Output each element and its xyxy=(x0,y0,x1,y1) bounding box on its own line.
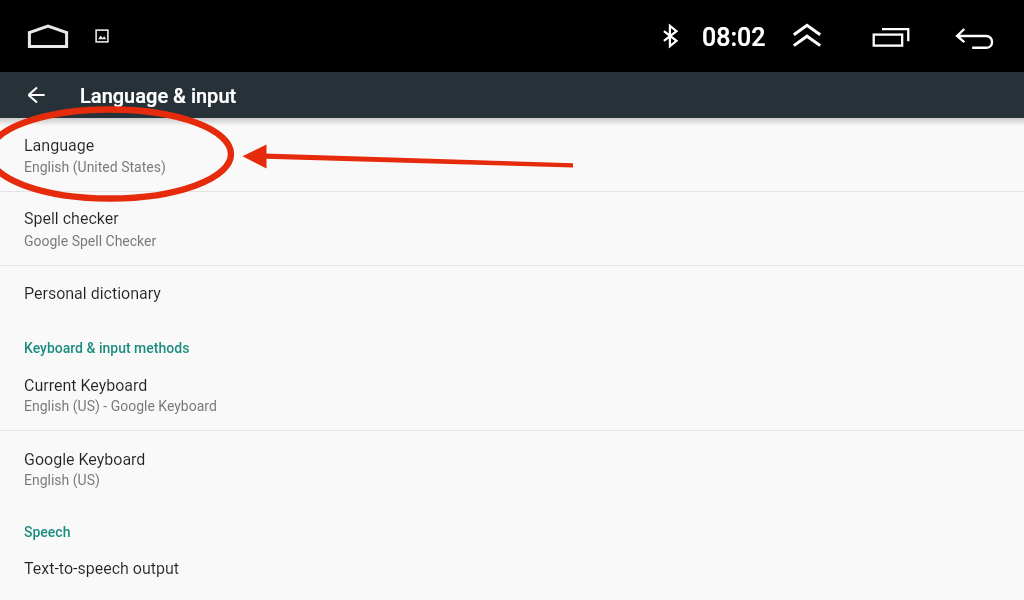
staticText: Personal dictionary xyxy=(24,284,161,303)
button[interactable]: Navigate up xyxy=(13,72,60,118)
button[interactable]: Screenshot xyxy=(95,29,109,43)
staticText: Google Spell Checker xyxy=(24,233,157,249)
button[interactable]: Text-to-speech output xyxy=(0,504,1024,600)
button[interactable]: Current Keyboard xyxy=(0,321,1024,430)
staticText: English (US) xyxy=(24,472,100,488)
staticText: Keyboard & input methods xyxy=(24,340,190,356)
staticText: Spell checker xyxy=(24,209,119,228)
button[interactable]: Google Keyboard xyxy=(0,430,1024,504)
button[interactable]: Recent apps xyxy=(865,13,917,59)
staticText: English (US) - Google Keyboard xyxy=(24,398,217,414)
button[interactable]: Spell checker xyxy=(0,191,1024,265)
staticText: Language xyxy=(24,136,95,155)
staticText: English (United States) xyxy=(24,159,166,175)
button[interactable]: Personal dictionary xyxy=(0,265,1024,321)
button[interactable]: Home xyxy=(28,25,68,48)
staticText: 08:02 xyxy=(702,23,766,52)
other: Bluetooth xyxy=(663,25,678,47)
staticText: Language & input xyxy=(80,84,237,107)
button[interactable]: Expand status bar xyxy=(781,12,833,58)
button[interactable]: Language xyxy=(0,118,1024,191)
staticText: Text-to-speech output xyxy=(24,559,180,578)
staticText: Current Keyboard xyxy=(24,376,148,395)
button[interactable]: Back xyxy=(948,14,1000,60)
staticText: Speech xyxy=(24,524,71,540)
staticText: Google Keyboard xyxy=(24,450,146,469)
